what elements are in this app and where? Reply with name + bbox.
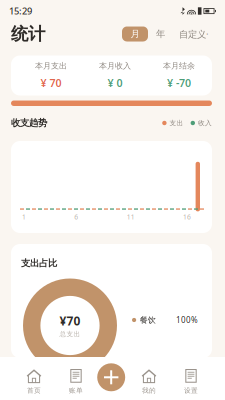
staticText: 15:29: [9, 5, 32, 17]
button[interactable]: 我的: [129, 360, 169, 400]
button[interactable]: 月: [122, 26, 148, 41]
staticText: 自定义·: [179, 28, 209, 40]
button[interactable]: 年: [148, 26, 173, 41]
button[interactable]: 账单: [56, 360, 96, 400]
staticText: 总支出: [59, 330, 80, 338]
button[interactable]: Add: [96, 362, 126, 392]
staticText: 统计: [11, 23, 45, 45]
staticText: 16: [183, 213, 191, 221]
staticText: 餐饮: [140, 315, 156, 325]
staticText: 月: [130, 28, 139, 40]
staticText: 6: [74, 213, 78, 221]
staticText: ¥ -70: [167, 76, 191, 90]
staticText: 账单: [69, 386, 83, 395]
staticText: 本月支出: [35, 61, 67, 71]
staticText: 100%: [176, 315, 198, 325]
staticText: 收入: [198, 119, 212, 127]
staticText: ¥70: [59, 313, 80, 329]
staticText: 本月结余: [163, 61, 195, 71]
staticText: 1: [22, 213, 26, 221]
staticText: 设置: [184, 386, 198, 395]
button[interactable]: 首页: [14, 360, 54, 400]
staticText: 年: [156, 28, 165, 40]
staticText: 支出: [170, 119, 184, 127]
staticText: 首页: [27, 386, 41, 395]
staticText: 支出占比: [21, 257, 57, 269]
staticText: 本月收入: [99, 61, 131, 71]
staticText: 我的: [142, 386, 156, 395]
button[interactable]: 设置: [171, 360, 211, 400]
staticText: ¥ 0: [107, 76, 122, 90]
staticText: 收支趋势: [11, 117, 47, 129]
button[interactable]: 自定义·: [173, 26, 215, 41]
staticText: ¥ 70: [40, 76, 61, 90]
staticText: 11: [127, 213, 135, 221]
